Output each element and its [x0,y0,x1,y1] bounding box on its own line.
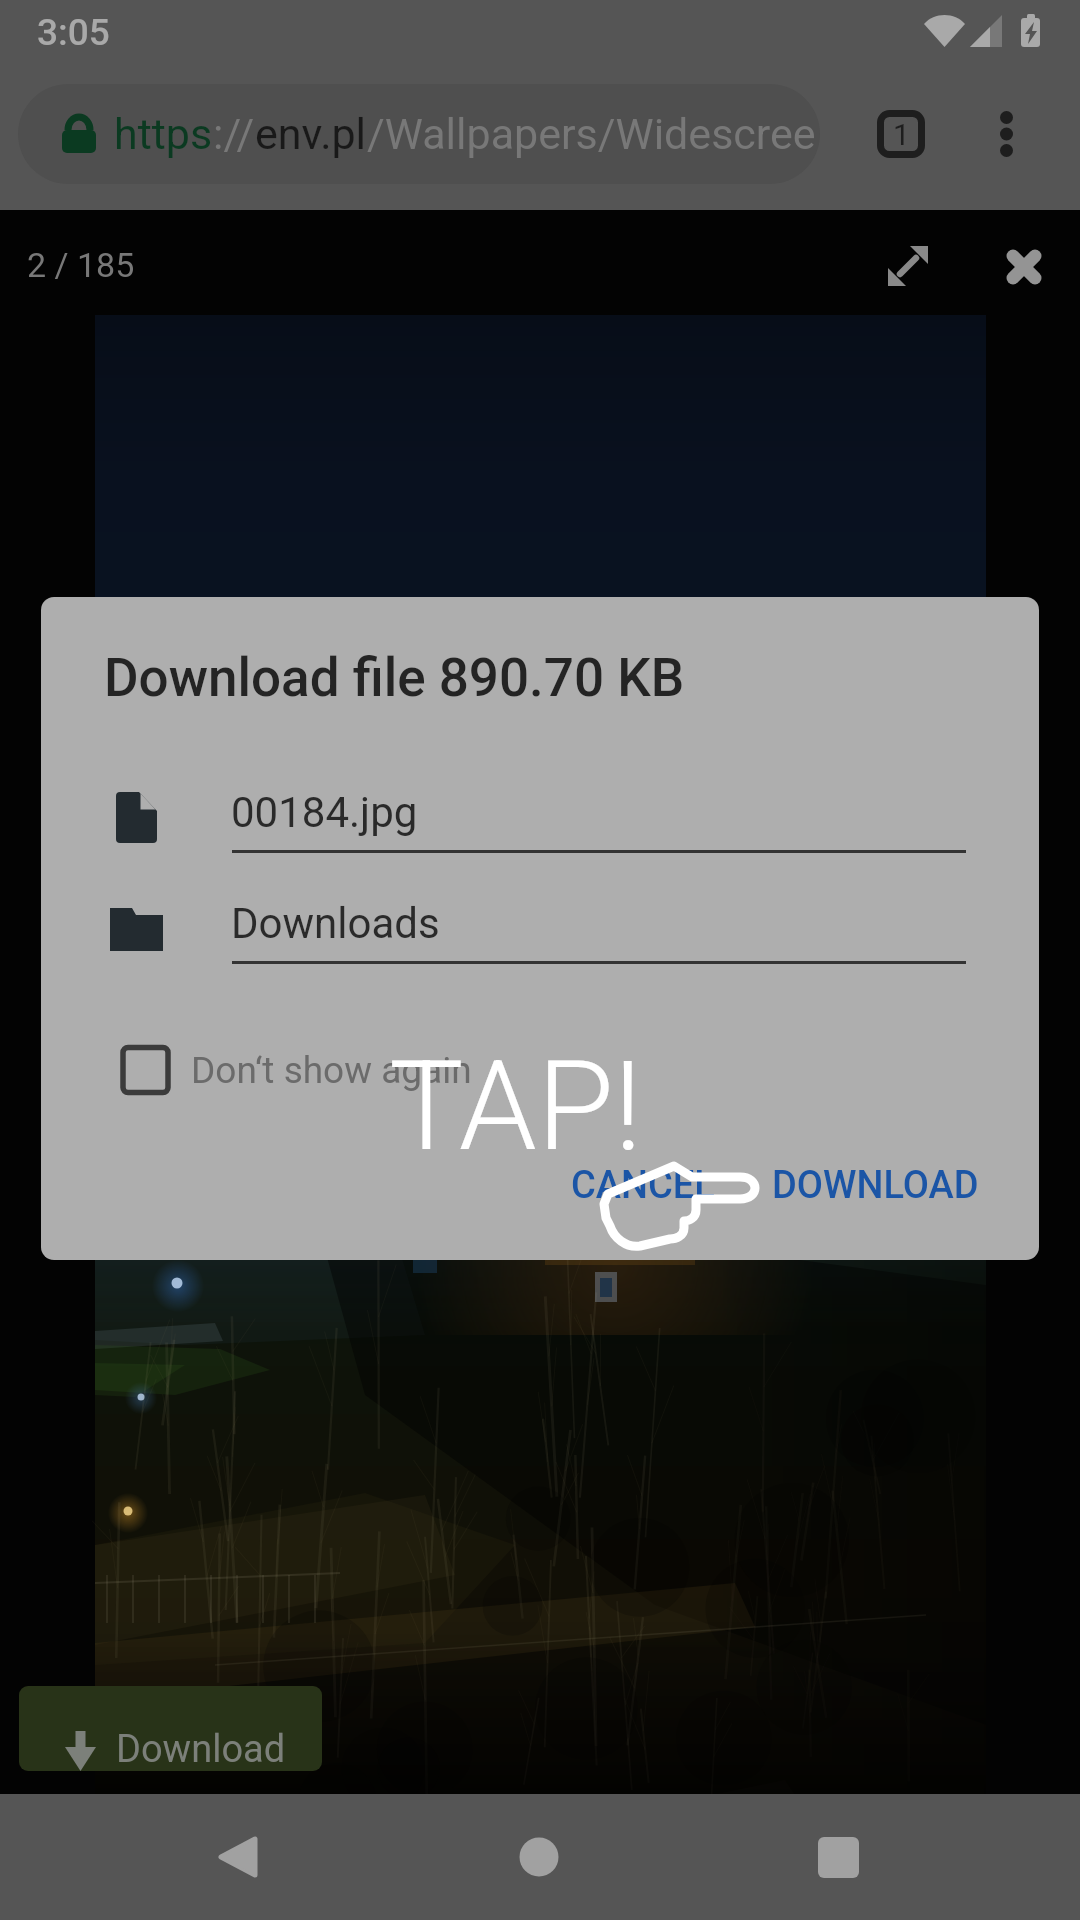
staticText: TAP! [389,1033,643,1179]
button[interactable]: DOWNLOAD [741,1142,1009,1228]
button[interactable]: Recent apps [778,1810,898,1904]
staticText: :// [213,109,255,159]
staticText: /Wallpapers/Widescree [367,109,816,159]
button[interactable]: Back [179,1810,299,1904]
staticText: CANCEL [571,1163,715,1208]
button[interactable]: https [18,84,820,184]
staticText: Download [116,1727,286,1771]
button[interactable]: Home [479,1810,599,1904]
staticText: https [114,109,213,159]
staticText: DOWNLOAD [772,1163,979,1208]
staticText: 1 [893,117,910,152]
staticText: 3:05 [37,11,110,54]
staticText: Don‘t show again [191,1049,472,1092]
staticText: Downloads [231,899,440,948]
button[interactable]: CANCEL [548,1142,738,1228]
staticText: 00184.jpg [231,788,418,837]
staticText: 2 / 185 [27,245,135,285]
staticText: env.pl [255,109,367,159]
button[interactable]: Fullscreen [869,227,947,305]
button[interactable]: Close [985,228,1063,306]
button[interactable]: More options [966,84,1046,184]
button[interactable]: Tabs [861,84,941,184]
button[interactable]: Don‘t show again [120,1029,472,1111]
staticText: Download file 890.70 KB [104,647,685,709]
button[interactable]: Download [19,1686,322,1771]
